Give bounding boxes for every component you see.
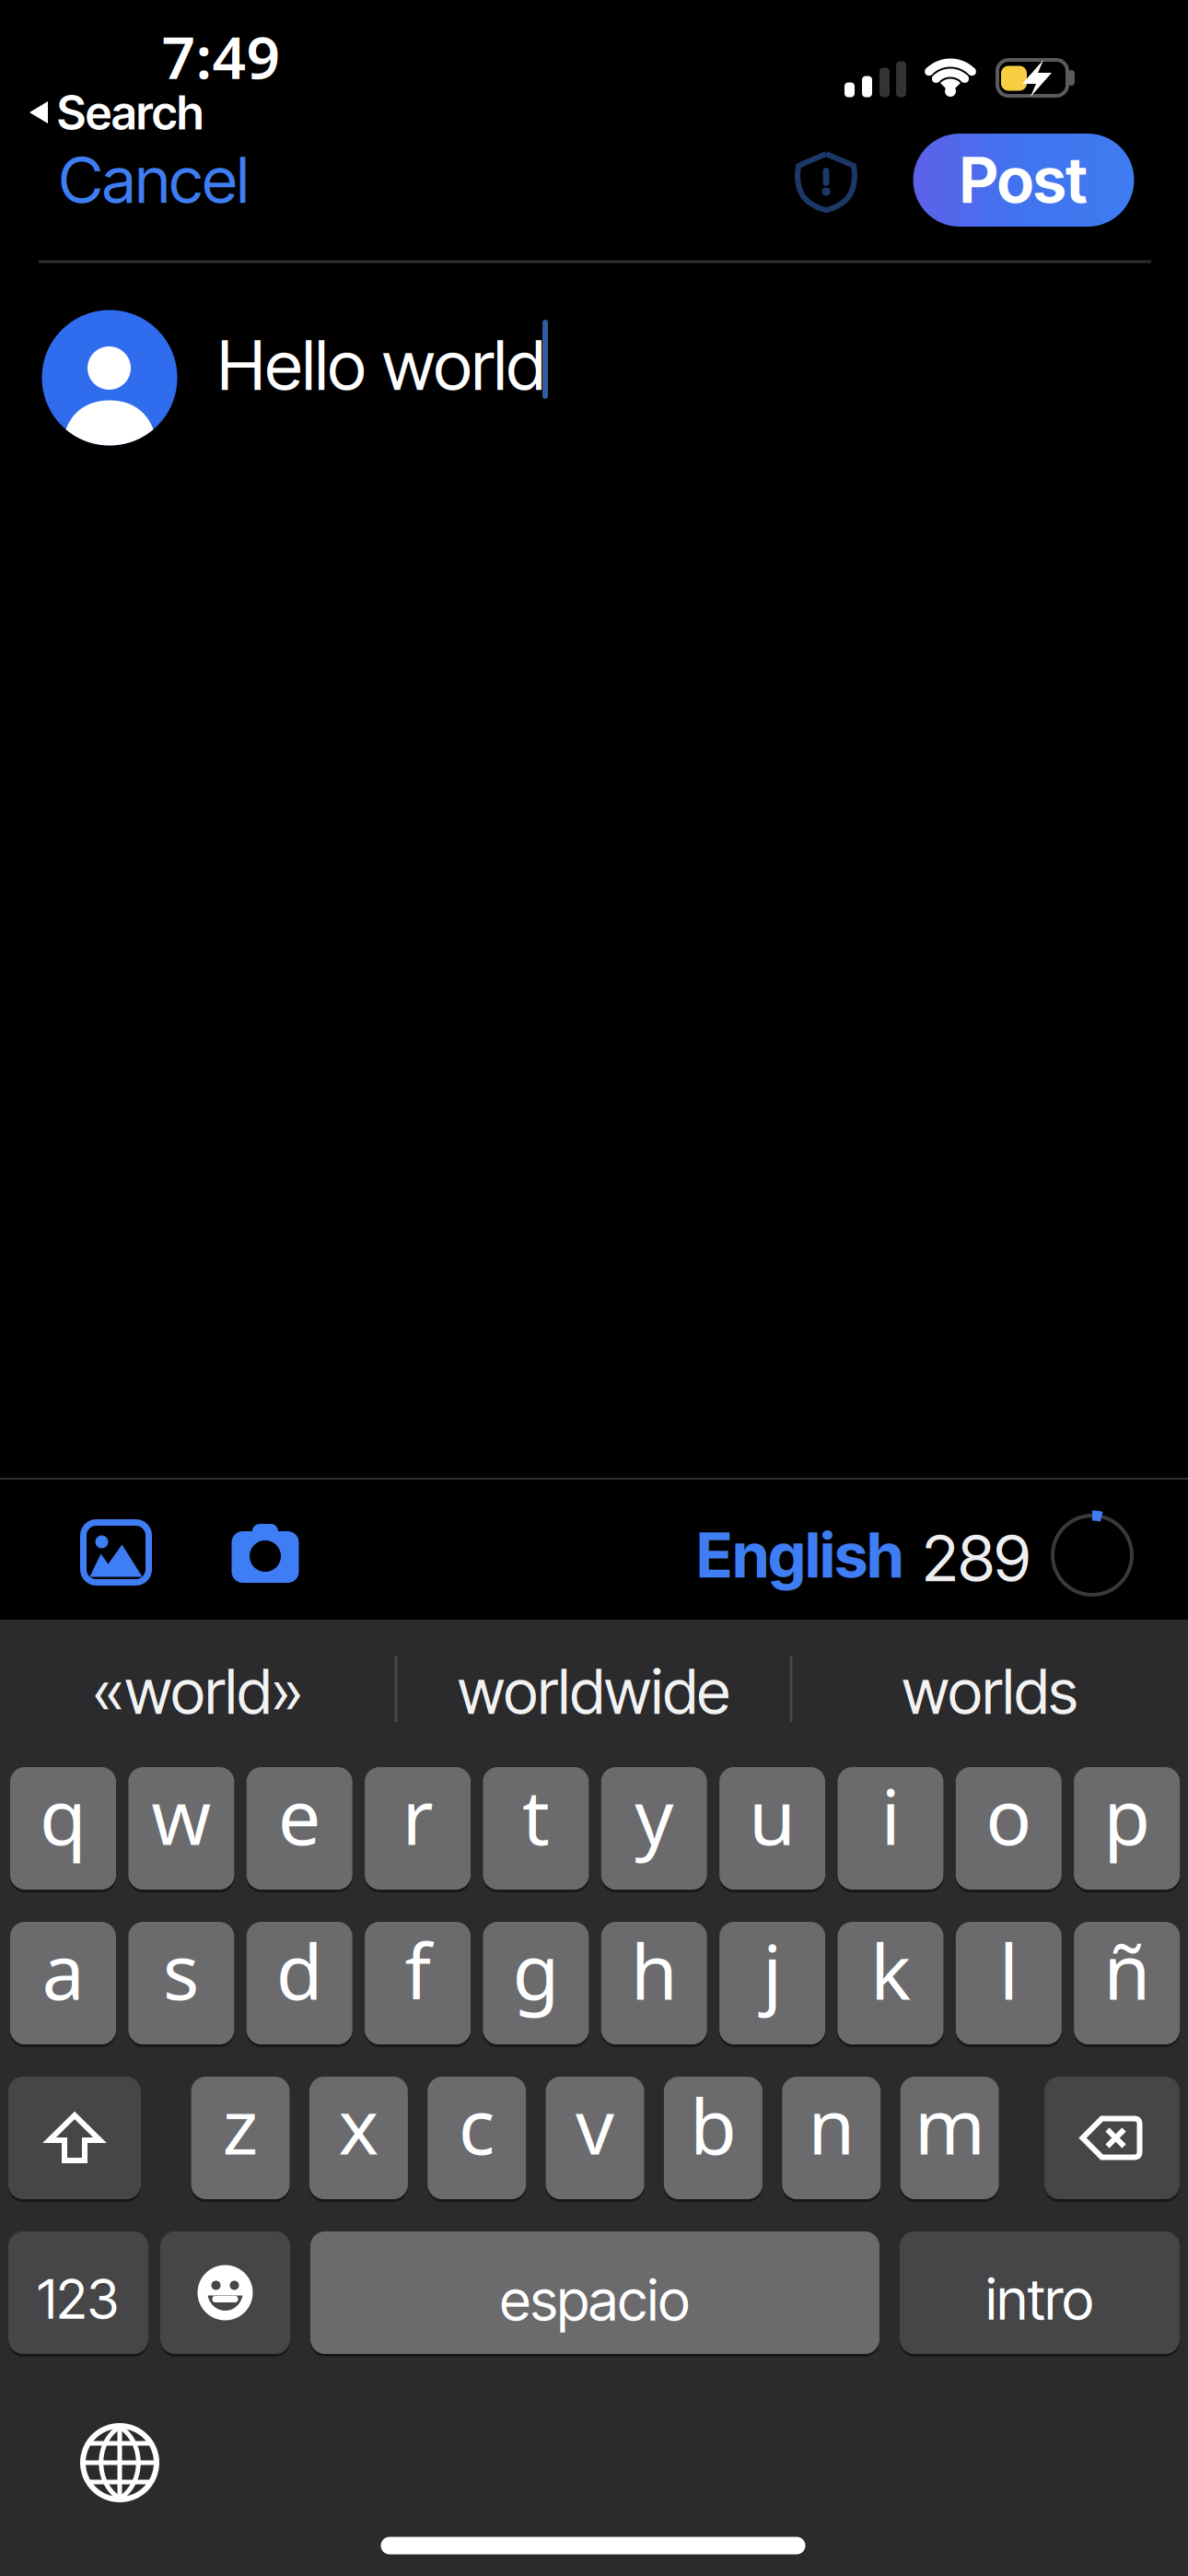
button[interactable]: b <box>664 2077 762 2199</box>
staticText: g <box>512 1920 559 2021</box>
button[interactable]: worldwide <box>401 1650 787 1733</box>
button[interactable]: Post <box>913 134 1134 227</box>
button[interactable]: Add photos <box>83 1522 149 1582</box>
button[interactable]: d <box>247 1922 352 2044</box>
staticText: 289 <box>922 1519 1030 1597</box>
staticText: u <box>749 1765 796 1866</box>
staticText: «world» <box>93 1654 303 1729</box>
button[interactable]: o <box>956 1767 1062 1890</box>
staticText: x <box>338 2074 379 2176</box>
button[interactable]: p <box>1074 1767 1180 1890</box>
button[interactable]: q <box>10 1767 116 1890</box>
staticText: q <box>40 1765 87 1866</box>
button[interactable]: Shift <box>8 2077 141 2199</box>
button[interactable]: espacio <box>310 2231 879 2354</box>
button[interactable]: r <box>365 1767 471 1890</box>
button[interactable]: i <box>837 1767 943 1890</box>
button[interactable]: c <box>427 2077 526 2199</box>
button[interactable]: worlds <box>797 1650 1183 1733</box>
staticText: w <box>151 1765 211 1866</box>
staticText: intro <box>986 2265 1094 2333</box>
button[interactable]: English <box>697 1518 904 1592</box>
button[interactable]: w <box>128 1767 234 1890</box>
button[interactable]: ñ <box>1074 1922 1180 2044</box>
staticText: espacio <box>500 2266 690 2334</box>
button[interactable]: 123 <box>8 2231 148 2354</box>
button[interactable]: Back to Search <box>29 92 250 133</box>
staticText: m <box>914 2074 985 2176</box>
staticText: k <box>870 1920 911 2021</box>
staticText: e <box>278 1765 321 1866</box>
button[interactable]: «world» <box>5 1650 391 1733</box>
staticText: ñ <box>1103 1920 1150 2021</box>
staticText: t <box>522 1765 550 1866</box>
button[interactable]: Open camera <box>232 1524 299 1583</box>
button[interactable]: y <box>601 1767 707 1890</box>
button[interactable]: f <box>365 1922 471 2044</box>
staticText: c <box>458 2074 495 2176</box>
button[interactable]: n <box>782 2077 881 2199</box>
button[interactable]: z <box>191 2077 290 2199</box>
staticText: o <box>986 1765 1032 1866</box>
button[interactable]: j <box>719 1922 825 2044</box>
staticText: 123 <box>37 2266 119 2332</box>
staticText: Search <box>57 84 204 141</box>
staticText: 7:49 <box>162 17 280 95</box>
button[interactable]: a <box>10 1922 116 2044</box>
button[interactable]: s <box>128 1922 234 2044</box>
staticText: v <box>576 2074 614 2176</box>
button[interactable]: m <box>900 2077 999 2199</box>
button[interactable]: v <box>546 2077 644 2199</box>
button[interactable]: Content warnings <box>796 150 856 213</box>
button[interactable]: u <box>719 1767 825 1890</box>
staticText: f <box>405 1920 431 2021</box>
staticText: l <box>999 1920 1018 2021</box>
button[interactable]: Emoji <box>160 2231 290 2354</box>
staticText: worldwide <box>458 1654 730 1729</box>
staticText: n <box>808 2074 855 2176</box>
staticText: i <box>881 1765 900 1866</box>
button[interactable]: t <box>483 1767 589 1890</box>
staticText: y <box>635 1765 673 1866</box>
staticText: b <box>690 2074 737 2176</box>
button[interactable]: x <box>309 2077 408 2199</box>
staticText: Hello world <box>217 323 545 406</box>
button[interactable]: e <box>247 1767 352 1890</box>
staticText: j <box>763 1920 782 2021</box>
staticText: Cancel <box>59 141 249 218</box>
staticText: d <box>276 1920 323 2021</box>
staticText: Post <box>960 142 1088 218</box>
button[interactable]: Delete <box>1044 2077 1180 2199</box>
button[interactable]: Next keyboard <box>83 2426 157 2500</box>
button[interactable]: l <box>956 1922 1062 2044</box>
staticText: z <box>222 2074 258 2176</box>
staticText: worlds <box>902 1654 1078 1729</box>
button[interactable]: Cancel <box>59 143 390 217</box>
staticText: a <box>42 1920 84 2021</box>
staticText: s <box>163 1920 200 2021</box>
staticText: p <box>1103 1765 1150 1866</box>
staticText: r <box>402 1765 433 1866</box>
button[interactable]: g <box>483 1922 589 2044</box>
button[interactable]: intro <box>900 2231 1180 2354</box>
staticText: English <box>697 1518 904 1592</box>
staticText: h <box>631 1920 678 2021</box>
button[interactable]: k <box>837 1922 943 2044</box>
button[interactable]: h <box>601 1922 707 2044</box>
